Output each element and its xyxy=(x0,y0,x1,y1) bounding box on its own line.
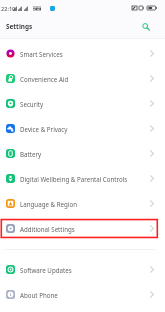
staticText: Convenience Aid xyxy=(20,75,150,83)
button[interactable]: Security xyxy=(0,91,165,116)
button[interactable]: Battery xyxy=(0,141,165,166)
button[interactable]: Additional Settings xyxy=(0,216,165,241)
staticText: 22:10 xyxy=(1,5,16,13)
staticText: Smart Services xyxy=(20,50,150,58)
staticText: Security xyxy=(20,100,150,108)
staticText: Device & Privacy xyxy=(20,125,150,133)
staticText: Additional Settings xyxy=(20,225,150,233)
button[interactable]: Search xyxy=(139,20,153,34)
staticText: Software Updates xyxy=(20,266,150,274)
button[interactable]: Smart Services xyxy=(0,41,165,66)
staticText: About Phone xyxy=(20,291,150,299)
staticText: Settings xyxy=(6,22,33,31)
staticText: Language & Region xyxy=(20,200,150,208)
staticText: Digital Wellbeing & Parental Controls xyxy=(20,175,150,183)
staticText: Battery xyxy=(20,150,150,158)
button[interactable]: Language & Region xyxy=(0,191,165,216)
button[interactable]: Convenience Aid xyxy=(0,66,165,91)
button[interactable]: About Phone xyxy=(0,282,165,307)
button[interactable]: Device & Privacy xyxy=(0,116,165,141)
button[interactable]: Digital Wellbeing & Parental Controls xyxy=(0,166,165,191)
button[interactable]: Software Updates xyxy=(0,257,165,282)
